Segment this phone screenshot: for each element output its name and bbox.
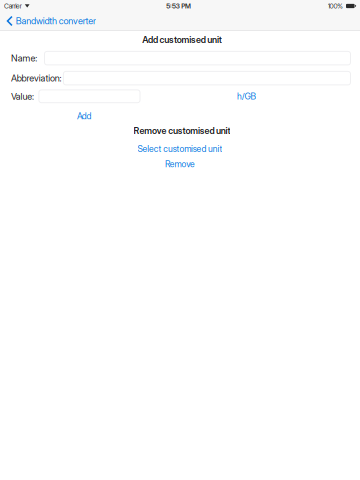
staticText: h/GB	[237, 91, 256, 102]
staticText: Name:	[11, 53, 37, 64]
staticText: 100%	[328, 2, 343, 10]
staticText: 5:53 PM	[166, 2, 191, 10]
staticText: Select customised unit	[138, 144, 222, 154]
staticText: Bandwidth converter	[16, 15, 96, 26]
staticText: Add	[77, 111, 92, 121]
button[interactable]: Remove	[159, 157, 201, 171]
staticText: Abbreviation:	[11, 73, 62, 84]
staticText: Value:	[11, 91, 34, 102]
staticText: Add customised unit	[142, 34, 222, 45]
button[interactable]: Bandwidth converter	[0, 12, 104, 30]
staticText: Remove customised unit	[134, 125, 230, 136]
staticText: Carrier	[4, 2, 22, 10]
button[interactable]: Select customised unit	[132, 142, 228, 156]
staticText: Remove	[165, 159, 195, 169]
button[interactable]: h/GB	[233, 89, 260, 104]
button[interactable]: Add	[72, 109, 97, 123]
